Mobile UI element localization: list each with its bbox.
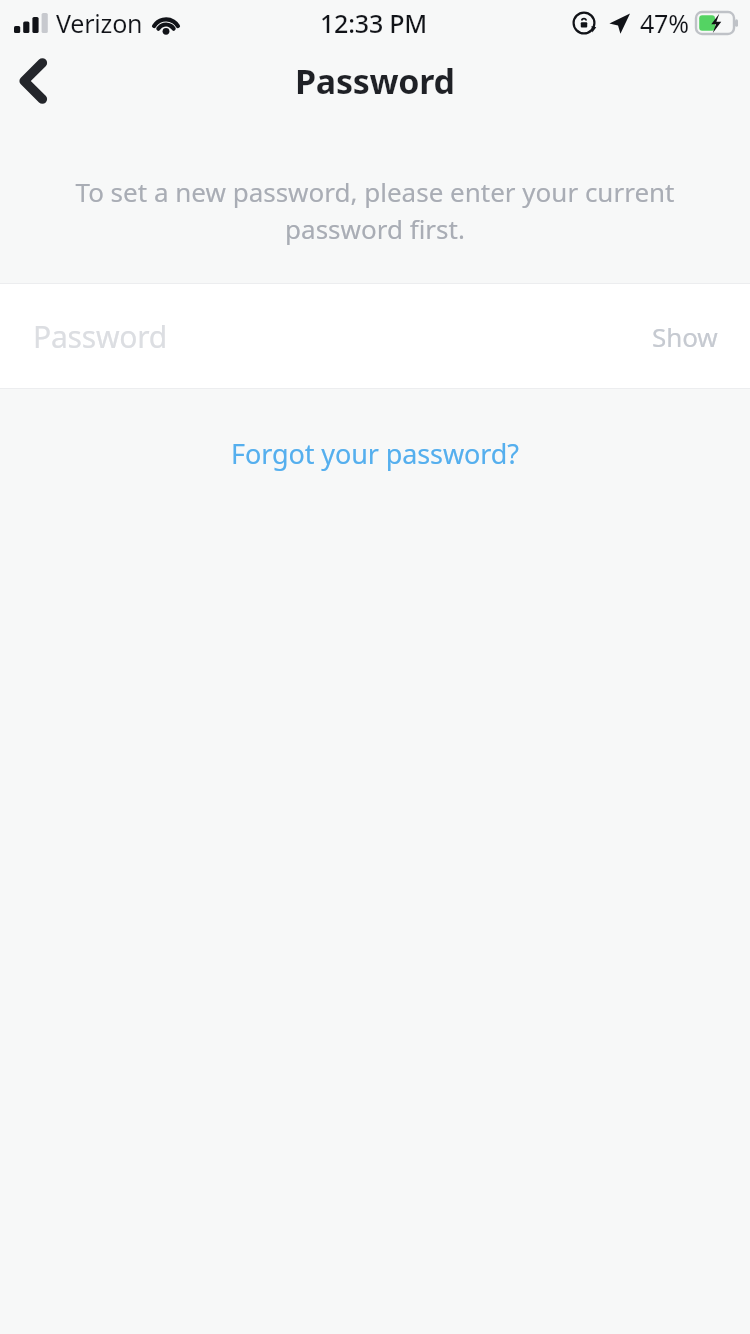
- staticText: 47%: [640, 6, 689, 40]
- staticText: Show: [652, 319, 718, 354]
- button[interactable]: Password: [0, 284, 750, 388]
- button[interactable]: Back: [0, 48, 66, 114]
- button[interactable]: Forgot your password?: [215, 429, 535, 478]
- staticText: Password: [33, 316, 168, 357]
- button[interactable]: Show: [620, 301, 750, 372]
- staticText: Forgot your password?: [231, 435, 519, 472]
- staticText: Verizon: [56, 6, 143, 40]
- staticText: Password: [295, 58, 455, 104]
- staticText: To set a new password, please enter your…: [56, 174, 694, 247]
- staticText: 12:33 PM: [320, 6, 428, 40]
